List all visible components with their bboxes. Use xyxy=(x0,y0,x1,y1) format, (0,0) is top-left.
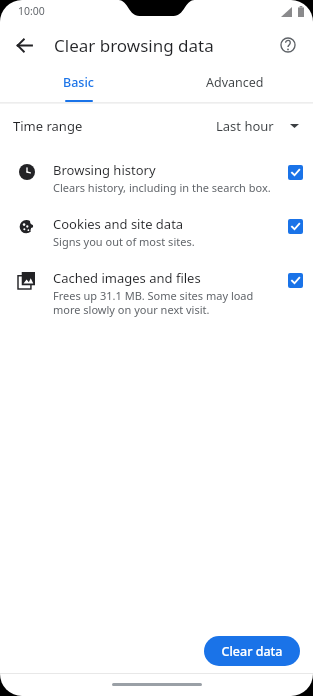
button[interactable]: Cookies and site data xyxy=(0,197,313,251)
staticText: Browsing history xyxy=(53,161,156,179)
staticText: Time range xyxy=(13,117,83,135)
staticText: Clear browsing data xyxy=(54,34,214,57)
staticText: Cookies and site data xyxy=(53,215,184,233)
staticText: Clear data xyxy=(221,643,283,660)
staticText: Cached images and files xyxy=(53,269,201,287)
button[interactable]: Cached images and files xyxy=(0,251,313,319)
button[interactable]: Advanced xyxy=(156,68,313,102)
button[interactable]: Basic xyxy=(0,68,156,102)
button[interactable]: Back xyxy=(4,25,44,65)
button[interactable]: Help xyxy=(269,26,307,64)
button[interactable]: Checked xyxy=(288,273,303,288)
button[interactable]: Clear data xyxy=(204,636,300,666)
staticText: Signs you out of most sites. xyxy=(53,234,195,249)
button[interactable]: Checked xyxy=(288,219,303,234)
staticText: 10:00 xyxy=(18,4,45,18)
staticText: Clears history, including in the search … xyxy=(53,180,271,195)
staticText: Frees up 31.1 MB. Some sites may load mo… xyxy=(53,288,254,317)
button[interactable]: Time range xyxy=(0,105,313,147)
staticText: Advanced xyxy=(206,74,264,91)
staticText: Basic xyxy=(63,74,94,91)
button[interactable]: Checked xyxy=(288,165,303,180)
staticText: Last hour xyxy=(216,117,274,135)
button[interactable]: Browsing history xyxy=(0,147,313,197)
